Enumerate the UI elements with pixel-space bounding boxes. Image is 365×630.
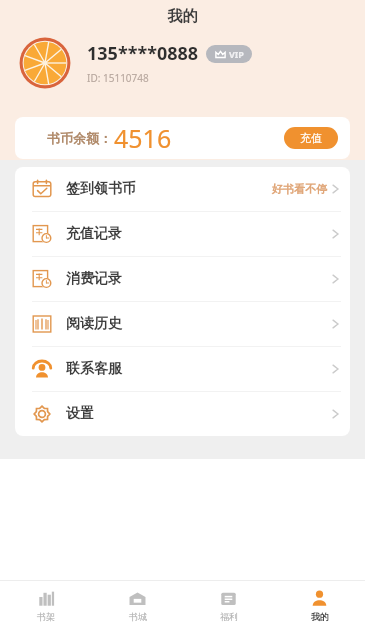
staticText: VIP (229, 48, 244, 60)
staticText: 设置 (66, 405, 94, 423)
staticText: 我的 (0, 7, 365, 26)
button[interactable]: 充值记录 (15, 212, 350, 256)
staticText: 充值记录 (66, 225, 122, 243)
button[interactable]: 充值 (284, 127, 338, 149)
button[interactable]: 书架 (0, 581, 92, 630)
staticText: ID: 15110748 (87, 71, 149, 85)
staticText: 签到领书币 (66, 180, 136, 198)
staticText: 联系客服 (66, 360, 122, 378)
button[interactable]: VIP (206, 45, 252, 63)
staticText: 书城 (129, 611, 147, 622)
staticText: 消费记录 (66, 270, 122, 288)
staticText: 阅读历史 (66, 315, 122, 333)
staticText: 我的 (311, 611, 329, 622)
staticText: 充值 (300, 131, 322, 145)
button[interactable]: 书城 (92, 581, 183, 630)
staticText: 福利 (220, 611, 238, 622)
button[interactable]: 我的 (274, 581, 365, 630)
button[interactable]: 消费记录 (15, 257, 350, 301)
button[interactable]: 阅读历史 (15, 302, 350, 346)
staticText: 好书看不停 (272, 182, 327, 196)
button[interactable]: 福利 (183, 581, 274, 630)
button[interactable]: 联系客服 (15, 347, 350, 391)
staticText: 135****0888 (87, 41, 199, 66)
button[interactable]: 签到领书币 (15, 167, 350, 211)
staticText: 4516 (114, 121, 172, 155)
button[interactable]: 设置 (15, 392, 350, 436)
staticText: 书币余额： (47, 130, 112, 146)
staticText: 书架 (37, 611, 55, 622)
